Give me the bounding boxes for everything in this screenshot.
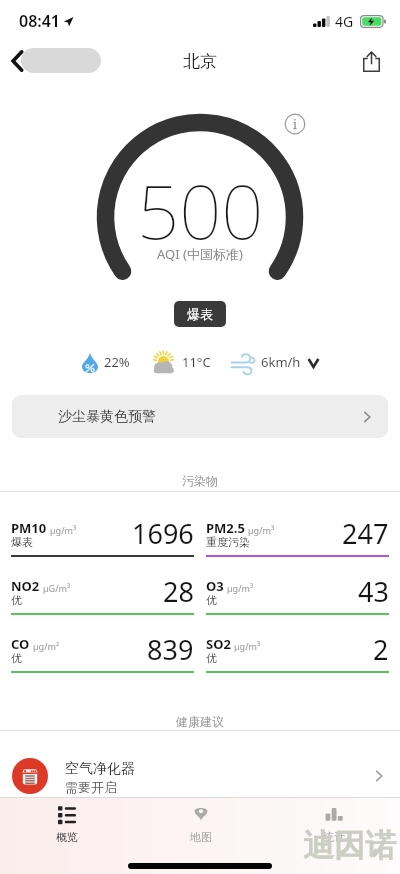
button[interactable]: Back	[1, 45, 33, 77]
staticText: 11°C	[182, 353, 211, 371]
staticText: µg/m³	[234, 640, 261, 652]
staticText: µG/m³	[43, 582, 71, 594]
staticText: 43	[358, 573, 389, 610]
staticText: PM10	[11, 519, 47, 537]
staticText: SO2	[206, 635, 231, 653]
staticText: 2	[373, 631, 389, 668]
staticText: NO2	[11, 577, 40, 595]
staticText: 500	[137, 160, 264, 261]
staticText: 6km/h	[261, 353, 301, 371]
staticText: 优	[11, 651, 22, 665]
staticText: AQI (中国标准)	[157, 245, 243, 263]
staticText: 优	[206, 651, 217, 665]
staticText: 北京	[183, 51, 217, 72]
staticText: 统计	[323, 830, 345, 844]
staticText: O3	[206, 577, 224, 595]
button[interactable]: NO2	[11, 570, 194, 615]
staticText: 健康建议	[176, 714, 224, 729]
staticText: 247	[342, 515, 389, 552]
button[interactable]: PM10	[11, 512, 194, 557]
button[interactable]: Info	[284, 113, 306, 135]
staticText: 08:41	[19, 10, 61, 32]
staticText: 22%	[104, 353, 130, 371]
staticText: 迪因诺	[303, 826, 396, 865]
staticText: 爆表	[11, 535, 33, 549]
staticText: 空气净化器	[65, 760, 135, 778]
button[interactable]: PM2.5	[206, 512, 389, 557]
staticText: i	[293, 116, 297, 132]
staticText: 地图	[190, 830, 212, 844]
button[interactable]: O3	[206, 570, 389, 615]
staticText: 28	[163, 573, 194, 610]
button[interactable]: 沙尘暴黄色预警	[12, 395, 388, 438]
staticText: 污染物	[182, 473, 218, 488]
staticText: µg/m³	[50, 524, 77, 536]
staticText: 1696	[132, 515, 194, 552]
staticText: µg/m²	[33, 640, 60, 652]
staticText: CO	[11, 635, 30, 653]
staticText: 概览	[56, 830, 78, 844]
staticText: µg/m³	[248, 524, 275, 536]
staticText: 优	[11, 593, 22, 607]
button[interactable]: 空气净化器	[0, 747, 400, 804]
staticText: 839	[147, 631, 194, 668]
staticText: 爆表	[187, 306, 213, 322]
button[interactable]: CO	[11, 628, 194, 673]
staticText: 优	[206, 593, 217, 607]
staticText: µg/m³	[227, 582, 254, 594]
staticText: 需要开启	[65, 779, 117, 795]
button[interactable]: 统计	[267, 805, 400, 844]
button[interactable]: Share	[354, 44, 388, 78]
staticText: 沙尘暴黄色预警	[58, 408, 156, 426]
button[interactable]: SO2	[206, 628, 389, 673]
staticText: PM2.5	[206, 519, 245, 537]
staticText: 4G	[335, 12, 354, 31]
staticText: 重度污染	[206, 535, 250, 549]
button[interactable]: 概览	[0, 805, 134, 844]
button[interactable]: 地图	[134, 805, 267, 844]
button[interactable]: 爆表	[174, 301, 226, 327]
